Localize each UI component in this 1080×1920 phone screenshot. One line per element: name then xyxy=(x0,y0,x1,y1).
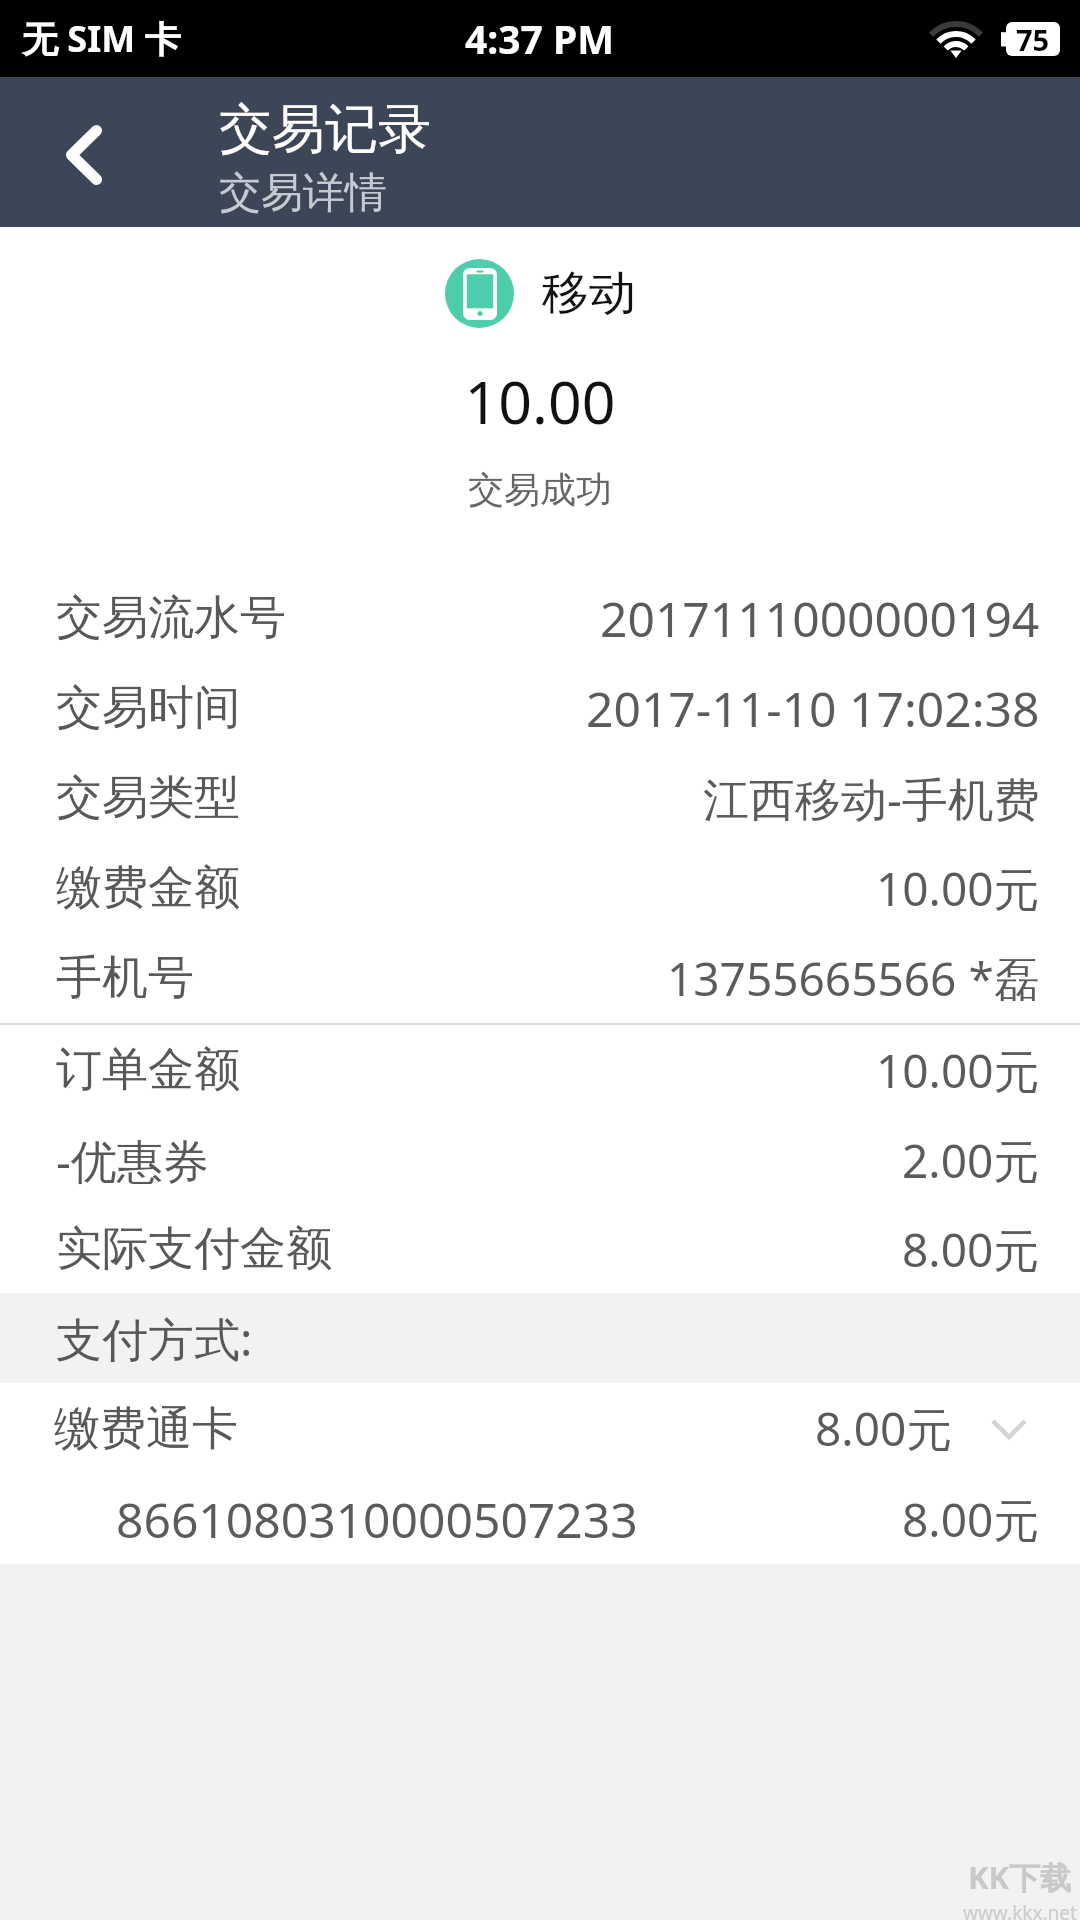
staticText: 10.00元 xyxy=(876,1039,1040,1102)
staticText: 订单金额 xyxy=(56,1041,240,1099)
staticText: 8.00元 xyxy=(902,1218,1040,1281)
staticText: 江西移动-手机费 xyxy=(703,767,1040,830)
staticText: 缴费金额 xyxy=(56,859,240,917)
staticText: 8.00元 xyxy=(902,1488,1040,1551)
staticText: 75 xyxy=(1016,20,1050,54)
staticText: 手机号 xyxy=(56,949,194,1007)
staticText: 8661080310000507233 xyxy=(116,1487,638,1552)
staticText: 13755665566 *磊 xyxy=(667,947,1040,1010)
button[interactable]: 缴费通卡 xyxy=(0,1383,1080,1474)
staticText: 4:37 PM xyxy=(465,12,615,65)
staticText: 8.00元 xyxy=(815,1397,953,1460)
staticText: 交易流水号 xyxy=(56,589,286,647)
other: 展开 xyxy=(991,1419,1027,1439)
staticText: 2.00元 xyxy=(902,1129,1040,1192)
staticText: 10.00 xyxy=(0,361,1080,441)
button[interactable]: 返回 xyxy=(0,77,160,227)
staticText: 2017111000000194 xyxy=(600,586,1040,651)
staticText: 实际支付金额 xyxy=(56,1220,332,1278)
staticText: www.kkx.net xyxy=(963,1900,1077,1920)
staticText: -优惠券 xyxy=(56,1129,209,1192)
staticText: 交易时间 xyxy=(56,679,240,737)
staticText: 支付方式: xyxy=(56,1307,253,1370)
staticText: KK下载 xyxy=(968,1856,1072,1898)
staticText: 交易成功 xyxy=(0,467,1080,512)
staticText: 10.00元 xyxy=(876,857,1040,920)
staticText: 交易详情 xyxy=(219,167,387,220)
staticText: 移动 xyxy=(542,264,636,323)
staticText: 交易记录 xyxy=(219,96,431,163)
staticText: 2017-11-10 17:02:38 xyxy=(586,676,1040,741)
staticText: 交易类型 xyxy=(56,769,240,827)
staticText: 无 SIM 卡 xyxy=(22,14,181,63)
staticText: 缴费通卡 xyxy=(54,1400,238,1458)
